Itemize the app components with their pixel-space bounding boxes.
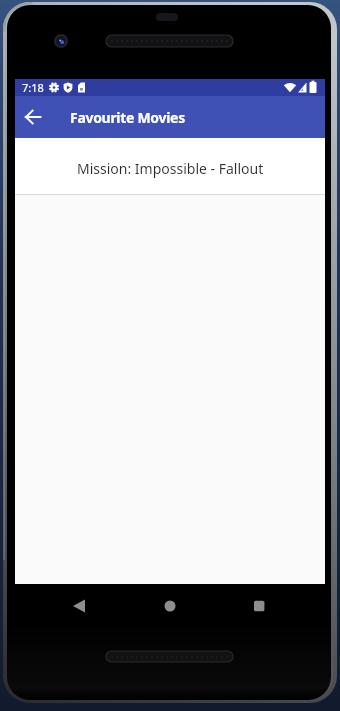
button[interactable] bbox=[59, 584, 100, 625]
button[interactable] bbox=[239, 584, 280, 625]
button[interactable] bbox=[15, 96, 51, 138]
staticText: Mission: Impossible - Fallout bbox=[77, 159, 264, 178]
staticText: Favourite Movies bbox=[70, 108, 185, 127]
button[interactable] bbox=[149, 584, 190, 625]
staticText: 7:18 bbox=[22, 80, 44, 95]
button[interactable]: Mission: Impossible - Fallout bbox=[15, 138, 325, 194]
